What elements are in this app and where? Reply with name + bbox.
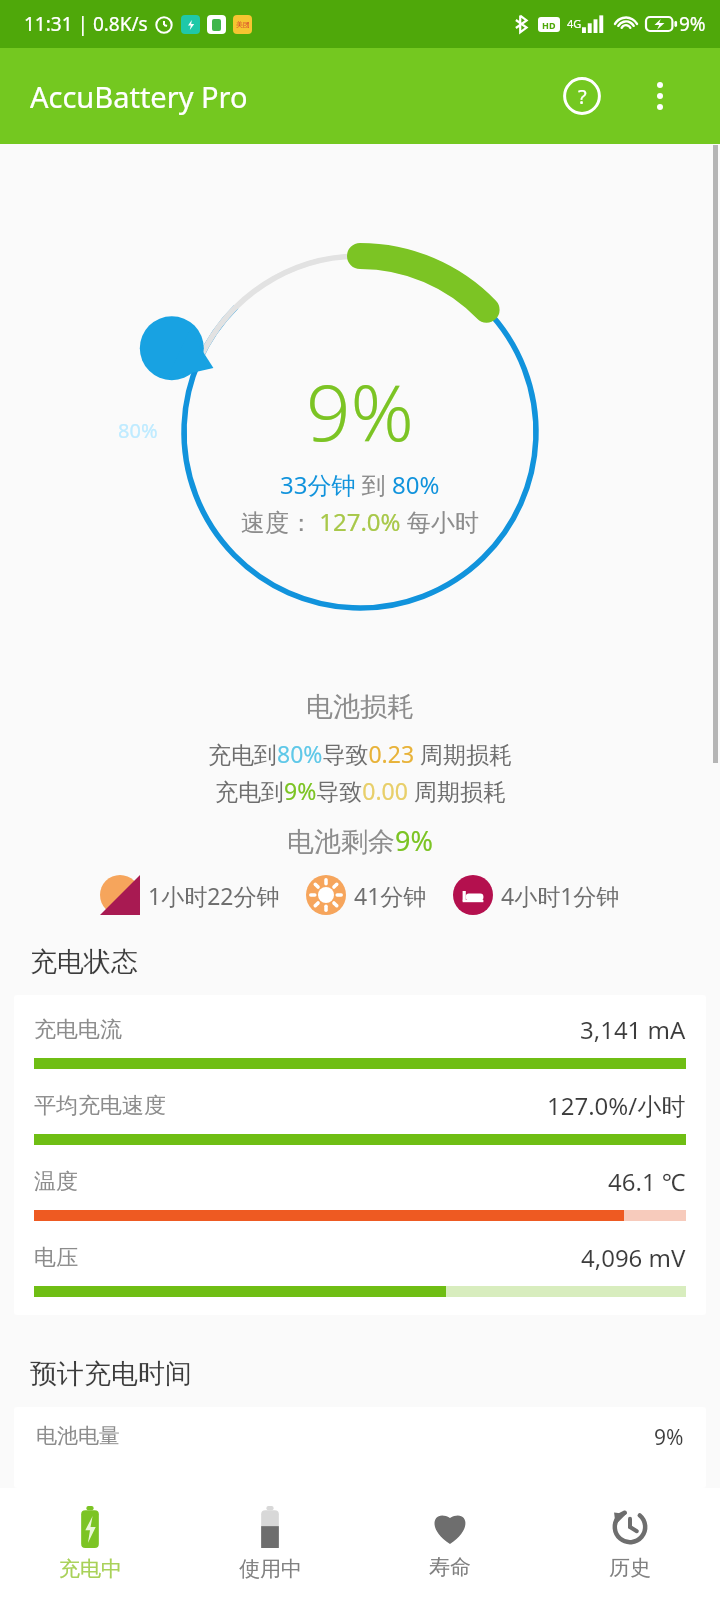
button[interactable]: 平均充电速度 [34,1089,686,1145]
staticText: 预计充电时间 [30,1357,192,1391]
staticText: 速度： 127.0% 每小时 [241,505,479,538]
staticText: 9% [306,358,414,464]
staticText: 4,096 mV [581,1241,686,1274]
staticText: ? [578,83,587,110]
staticText: 历史 [609,1555,651,1581]
staticText: 充电到80%导致0.23 周期损耗 [208,738,513,769]
staticText: 4G [567,16,582,31]
staticText: 33分钟 到 80% [280,468,440,501]
staticText: 寿命 [429,1554,471,1580]
staticText: 1小时22分钟 [148,880,280,911]
button[interactable]: More options [632,68,688,124]
button[interactable]: 电压 [34,1241,686,1297]
staticText: 4小时1分钟 [501,880,620,911]
staticText: 11:31 | 0.8K/s [24,11,148,37]
button[interactable]: 充电中 [0,1488,180,1600]
staticText: 电池剩余9% [287,822,433,859]
button[interactable]: 充电电流 [34,1013,686,1069]
button[interactable]: 温度 [34,1165,686,1221]
button[interactable]: Help [554,68,610,124]
staticText: 电压 [34,1244,78,1272]
staticText: 充电中 [59,1556,122,1582]
staticText: 127.0%/小时 [547,1089,686,1122]
staticText: 美团 [236,20,250,29]
staticText: 使用中 [239,1556,302,1582]
staticText: 9% [654,1423,684,1452]
staticText: 电池损耗 [306,690,414,724]
button[interactable]: 寿命 [360,1488,540,1600]
staticText: 3,141 mA [580,1013,686,1046]
staticText: 充电到9%导致0.00 周期损耗 [215,775,506,806]
staticText: 温度 [34,1168,78,1196]
staticText: 充电电流 [34,1016,122,1044]
button[interactable]: 历史 [540,1488,720,1600]
staticText: 46.1 ℃ [608,1165,686,1198]
staticText: 9% [679,11,706,37]
staticText: 电池电量 [36,1423,120,1449]
staticText: 41分钟 [354,880,427,911]
staticText: 充电状态 [30,945,138,979]
button[interactable]: 使用中 [180,1488,360,1600]
staticText: 平均充电速度 [34,1092,166,1120]
staticText: AccuBattery Pro [30,77,248,116]
staticText: 80% [118,417,158,444]
staticText: HD [542,19,556,31]
